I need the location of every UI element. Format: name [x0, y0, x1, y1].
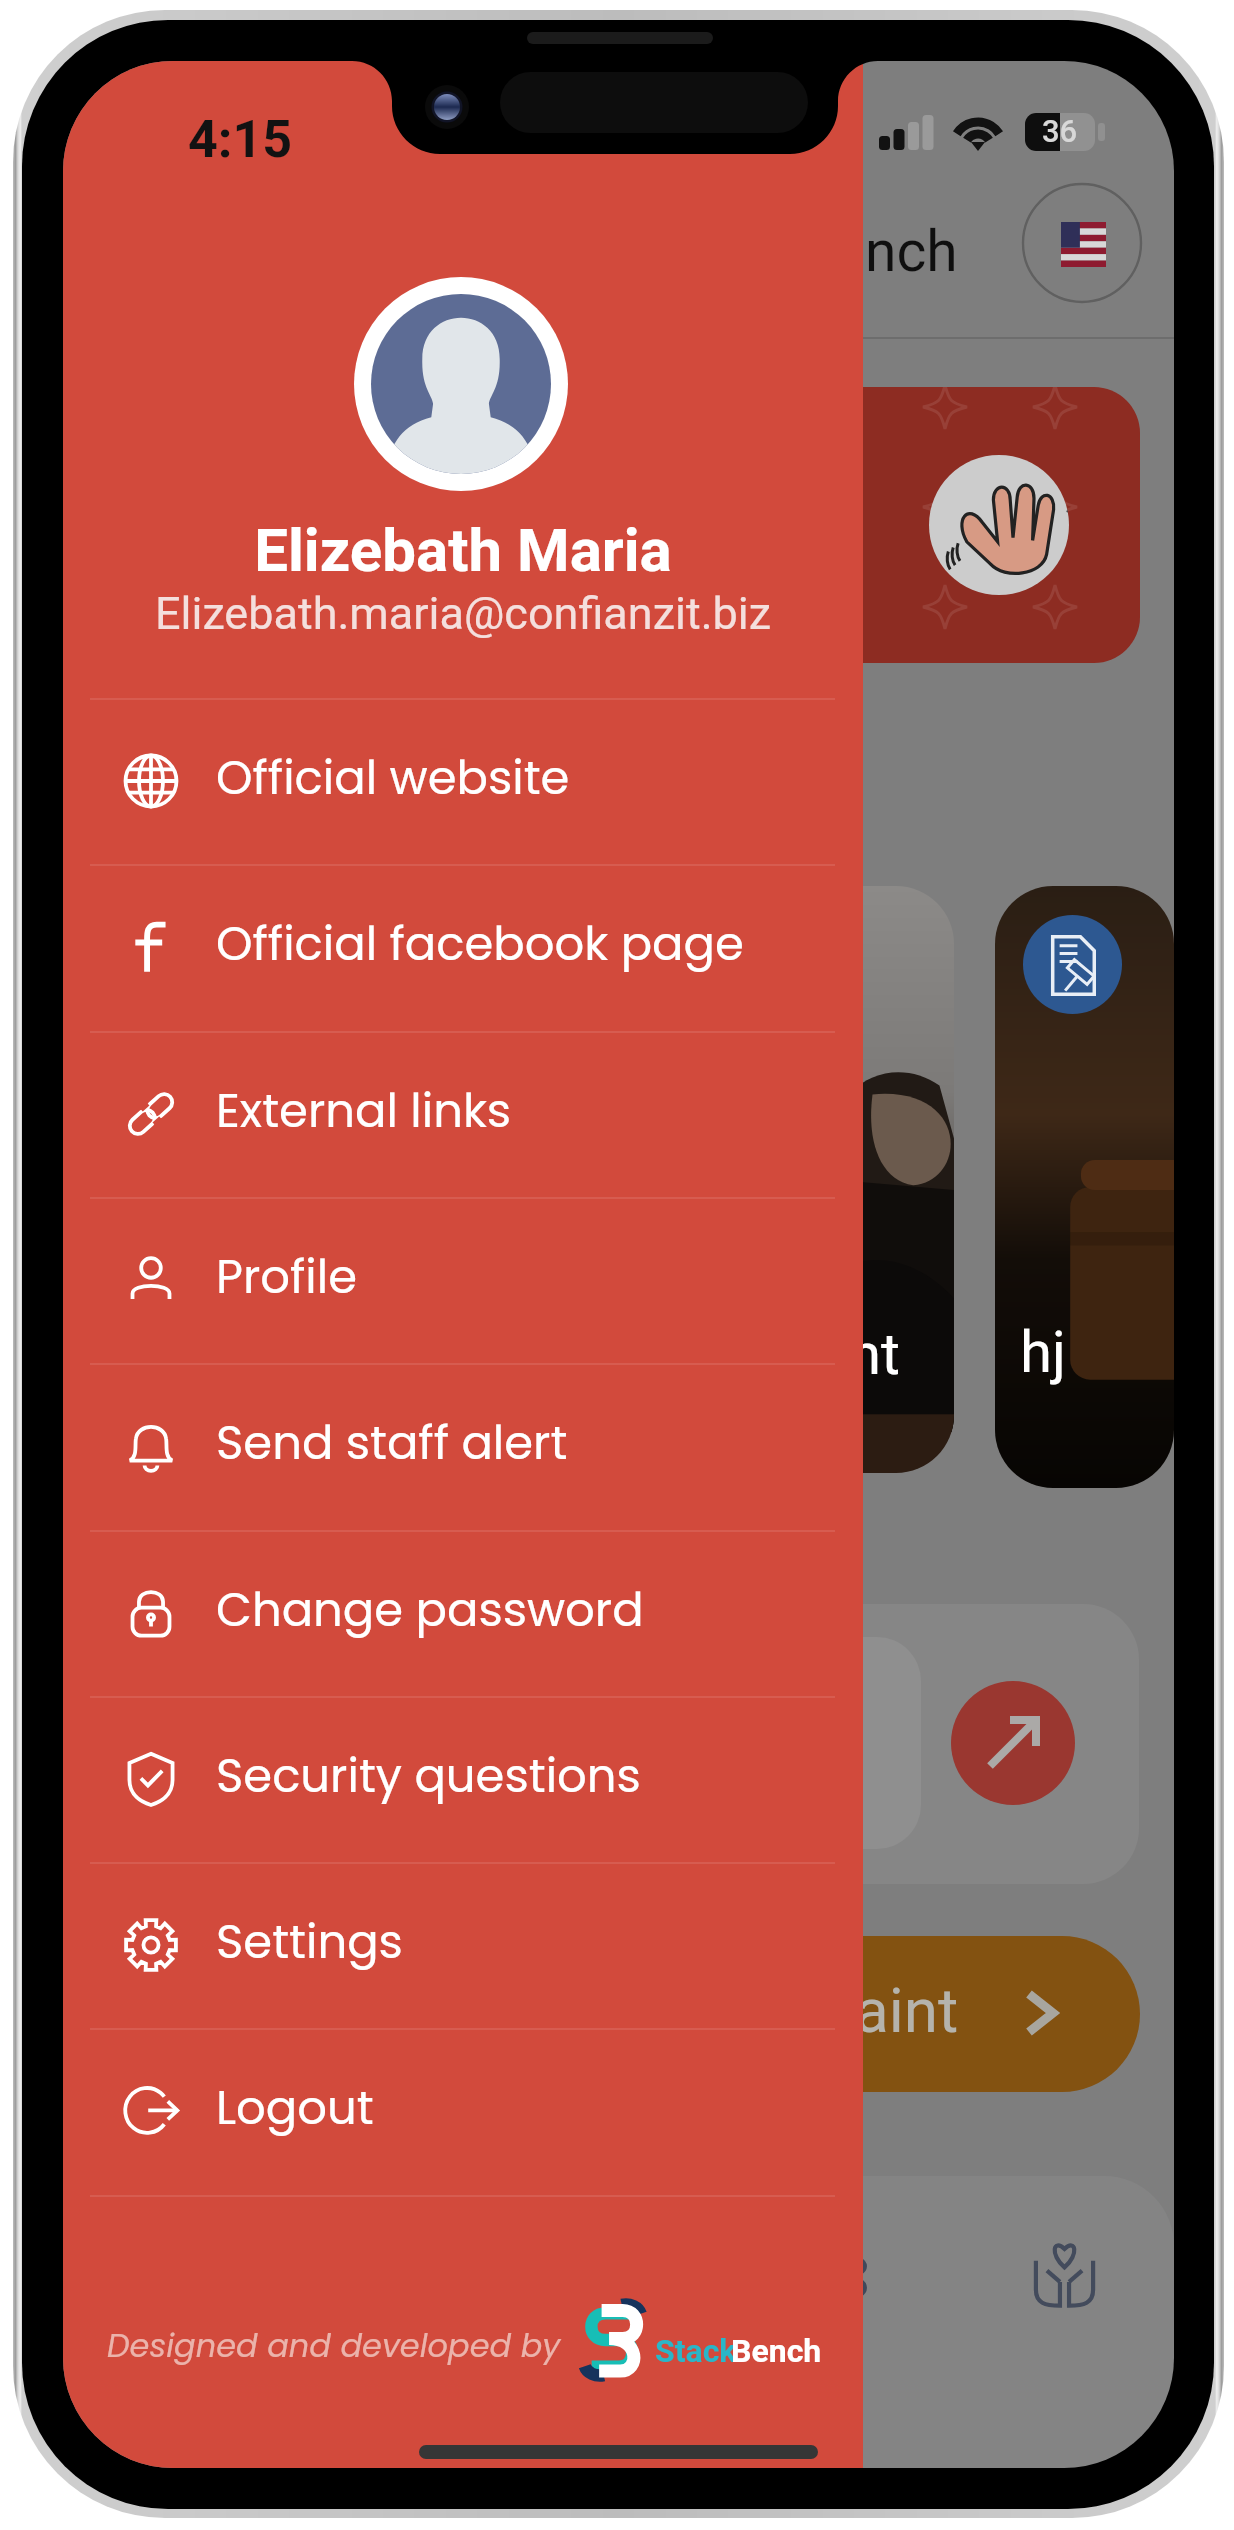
button[interactable]: Profile: [63, 1197, 863, 1363]
staticText: Logout: [216, 2075, 374, 2140]
staticText: Stack: [655, 2332, 737, 2370]
staticText: hj: [1020, 1318, 1066, 1386]
staticText: Official website: [216, 745, 570, 810]
staticText: Profile: [216, 1244, 358, 1309]
staticText: Security questions: [216, 1743, 641, 1808]
button[interactable]: Open: [951, 1681, 1075, 1805]
staticText: Designed and developed by: [107, 2323, 561, 2368]
button[interactable]: Send staff alert: [63, 1363, 863, 1529]
button[interactable]: Security questions: [63, 1696, 863, 1862]
staticText: External links: [216, 1078, 512, 1143]
staticText: 4:15: [188, 109, 293, 170]
staticText: Settings: [216, 1909, 403, 1974]
staticText: Elizebath.maria@confianzit.biz: [63, 587, 863, 640]
button[interactable]: Care: [1032, 2241, 1097, 2307]
staticText: Bench: [731, 2332, 822, 2370]
staticText: Change password: [216, 1577, 644, 1642]
staticText: nch: [865, 218, 958, 285]
button[interactable]: Official facebook page: [63, 864, 863, 1030]
staticText: aint: [855, 1974, 959, 2047]
staticText: Send staff alert: [216, 1410, 568, 1475]
staticText: Elizebath Maria: [63, 515, 863, 585]
staticText: 36: [1042, 113, 1078, 149]
staticText: nt: [849, 1320, 901, 1388]
button[interactable]: Logout: [63, 2028, 863, 2194]
button[interactable]: Change password: [63, 1530, 863, 1696]
staticText: Official facebook page: [216, 911, 744, 976]
button[interactable]: Official website: [63, 698, 863, 864]
button[interactable]: Settings: [63, 1862, 863, 2028]
button[interactable]: aint: [583, 1936, 1140, 2092]
button[interactable]: External links: [63, 1031, 863, 1197]
